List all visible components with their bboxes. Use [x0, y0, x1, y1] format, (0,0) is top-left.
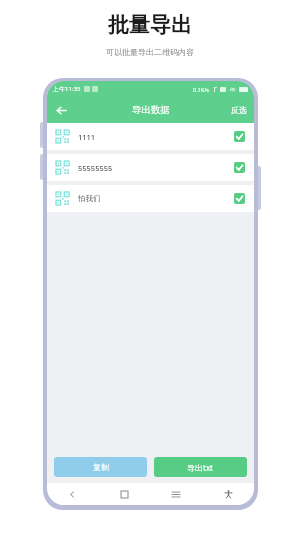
staticText: 反选: [231, 105, 247, 115]
button[interactable]: 辅助功能: [202, 483, 254, 505]
staticText: 可以批量导出二维码内容: [106, 47, 194, 57]
staticText: 怕我们: [78, 194, 101, 203]
button[interactable]: 怕我们: [47, 185, 254, 212]
button[interactable]: 反选: [224, 100, 254, 120]
staticText: 复制: [93, 462, 109, 472]
button[interactable]: 复制: [54, 457, 147, 477]
staticText: 批量导出: [108, 12, 192, 38]
button[interactable]: 已选中: [234, 193, 245, 204]
staticText: 1111: [78, 132, 96, 142]
button[interactable]: 已选中: [234, 131, 245, 142]
staticText: 导出txt: [187, 462, 214, 473]
button[interactable]: 1111: [47, 123, 254, 150]
staticText: 0.1K/s: [193, 86, 209, 93]
button[interactable]: 主页: [98, 483, 150, 505]
button[interactable]: 导出txt: [154, 457, 247, 477]
button[interactable]: 返回: [47, 483, 98, 505]
staticText: 导出数据: [132, 104, 170, 116]
button[interactable]: 55555555: [47, 154, 254, 181]
button[interactable]: 已选中: [234, 162, 245, 173]
button[interactable]: 返回: [50, 99, 72, 121]
staticText: 上午11:35: [53, 85, 81, 93]
button[interactable]: 最近任务: [150, 483, 202, 505]
staticText: 55555555: [78, 163, 113, 173]
